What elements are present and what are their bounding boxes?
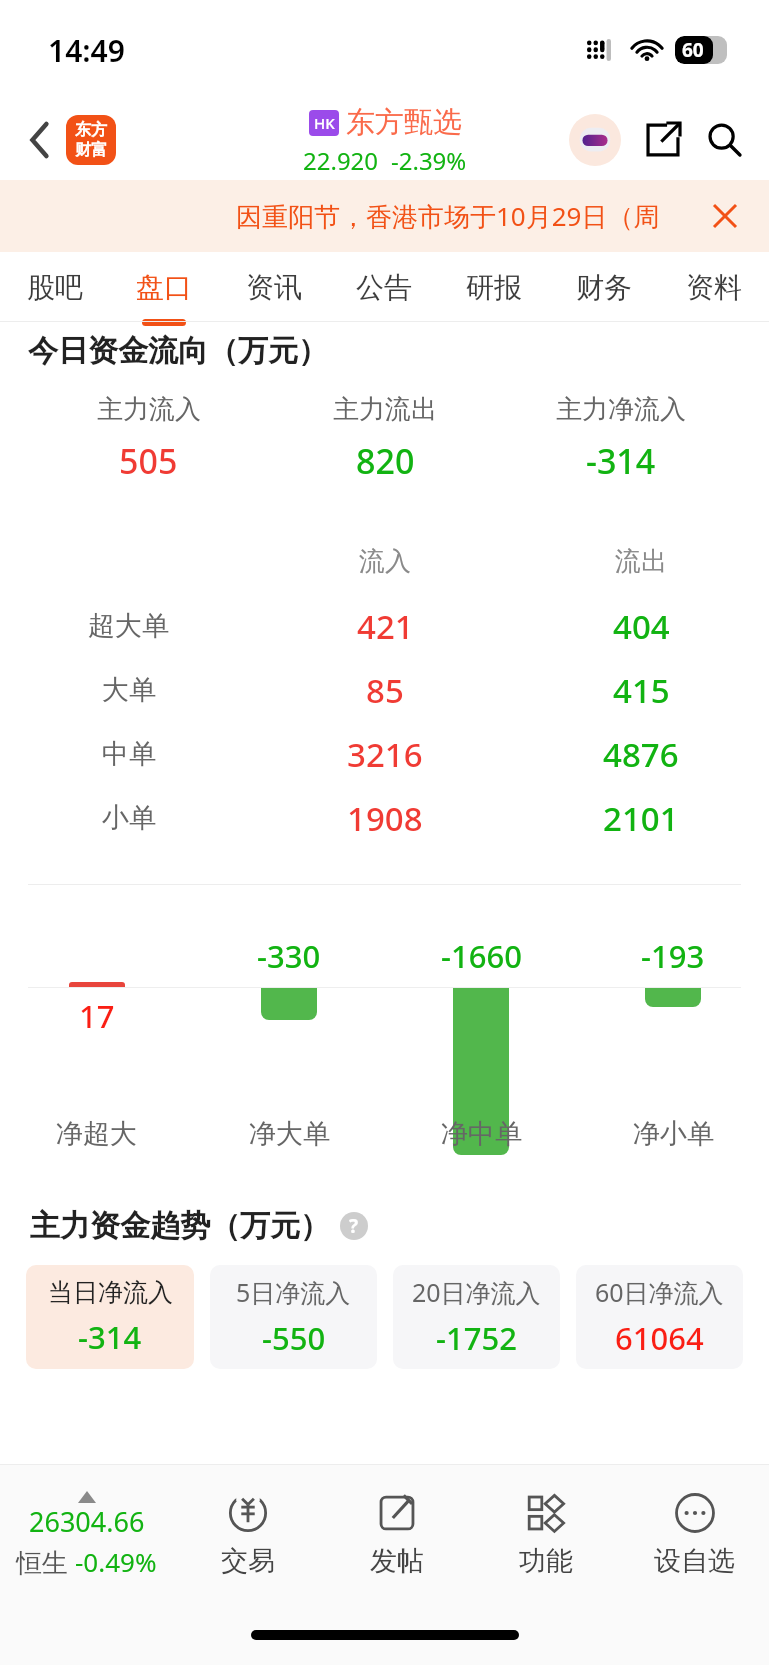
staticText: -1660: [441, 935, 522, 977]
staticText: 小单: [102, 801, 156, 835]
button[interactable]: 60日净流入: [576, 1265, 743, 1369]
staticText: -314: [586, 438, 656, 484]
button[interactable]: 功能: [471, 1465, 620, 1605]
staticText: 净大单: [249, 1117, 330, 1151]
staticText: 14:49: [48, 30, 125, 71]
staticText: 85: [366, 668, 404, 713]
staticText: 17: [79, 995, 115, 1037]
staticText: 60: [682, 37, 704, 63]
staticText: 404: [613, 604, 670, 649]
staticText: 421: [357, 604, 414, 649]
button[interactable]: 主力流入: [30, 374, 739, 502]
staticText: 中单: [102, 737, 156, 771]
staticText: 净中单: [441, 1117, 522, 1151]
staticText: 3216: [347, 732, 423, 777]
button[interactable]: 设自选: [620, 1465, 769, 1605]
staticText: 净小单: [633, 1117, 714, 1151]
staticText: 股吧: [27, 270, 83, 305]
staticText: 盘口: [136, 270, 192, 305]
staticText: 505: [119, 438, 178, 484]
staticText: 功能: [519, 1544, 573, 1578]
staticText: 当日净流入: [48, 1277, 173, 1308]
staticText: 2101: [603, 796, 679, 841]
button[interactable]: Close: [703, 194, 747, 238]
staticText: -314: [78, 1316, 142, 1358]
staticText: 820: [356, 438, 415, 484]
staticText: ?: [349, 1213, 359, 1239]
button[interactable]: 5日净流入: [210, 1265, 377, 1369]
button[interactable]: 发帖: [322, 1465, 471, 1605]
button[interactable]: 中单: [0, 722, 769, 786]
staticText: 研报: [466, 270, 522, 305]
button[interactable]: AI assistant: [569, 114, 621, 166]
staticText: -193: [641, 935, 705, 977]
staticText: 今日资金流向（万元）: [28, 332, 328, 366]
staticText: 因重阳节，香港市场于10月29日（周: [236, 198, 660, 234]
staticText: 公告: [356, 270, 412, 305]
button[interactable]: 小单: [0, 786, 769, 850]
button[interactable]: Share: [639, 116, 687, 164]
button[interactable]: 资讯: [219, 252, 329, 322]
staticText: 4876: [603, 732, 679, 777]
staticText: 资料: [686, 270, 742, 305]
staticText: 主力净流入: [556, 393, 686, 426]
staticText: -550: [262, 1317, 326, 1359]
staticText: 60日净流入: [595, 1275, 724, 1309]
staticText: 东方: [75, 120, 107, 140]
staticText: 财务: [576, 270, 632, 305]
staticText: 大单: [102, 673, 156, 707]
staticText: HK: [314, 113, 335, 133]
button[interactable]: 当日净流入: [26, 1265, 194, 1369]
staticText: 超大单: [88, 609, 169, 643]
button[interactable]: East Money: [66, 115, 116, 165]
staticText: 设自选: [654, 1544, 735, 1578]
button[interactable]: 大单: [0, 658, 769, 722]
staticText: 财富: [75, 140, 107, 160]
button[interactable]: 盘口: [109, 252, 219, 322]
button[interactable]: Back: [18, 118, 62, 162]
button[interactable]: 20日净流入: [393, 1265, 560, 1369]
button[interactable]: Search: [701, 116, 749, 164]
button[interactable]: 公告: [329, 252, 439, 322]
staticText: 净超大: [56, 1117, 137, 1151]
staticText: 1908: [347, 796, 423, 841]
staticText: -2.39%: [391, 144, 467, 177]
staticText: 恒生: [16, 1544, 75, 1580]
button[interactable]: 26304.66: [0, 1465, 173, 1605]
staticText: 流出: [615, 545, 667, 578]
staticText: 26304.66: [29, 1503, 145, 1540]
staticText: 415: [613, 668, 670, 713]
button[interactable]: 股吧: [0, 252, 109, 322]
button[interactable]: 超大单: [0, 594, 769, 658]
staticText: -330: [257, 935, 321, 977]
staticText: 流入: [359, 545, 411, 578]
button[interactable]: 流入: [0, 538, 769, 584]
staticText: 5日净流入: [236, 1275, 351, 1309]
staticText: 61064: [615, 1317, 704, 1359]
button[interactable]: 财务: [549, 252, 659, 322]
button[interactable]: 交易: [173, 1465, 322, 1605]
staticText: 20日净流入: [412, 1275, 541, 1309]
button[interactable]: 资料: [659, 252, 769, 322]
staticText: 22.920: [303, 144, 379, 177]
button[interactable]: Help: [340, 1212, 368, 1240]
staticText: -1752: [436, 1317, 517, 1359]
staticText: 发帖: [370, 1544, 424, 1578]
staticText: -0.49%: [75, 1544, 157, 1579]
button[interactable]: 研报: [439, 252, 549, 322]
staticText: 主力流出: [333, 393, 437, 426]
staticText: 资讯: [246, 270, 302, 305]
staticText: 主力流入: [97, 393, 201, 426]
staticText: 主力资金趋势（万元）: [30, 1207, 330, 1245]
staticText: 东方甄选: [346, 104, 462, 141]
staticText: 交易: [221, 1544, 275, 1578]
